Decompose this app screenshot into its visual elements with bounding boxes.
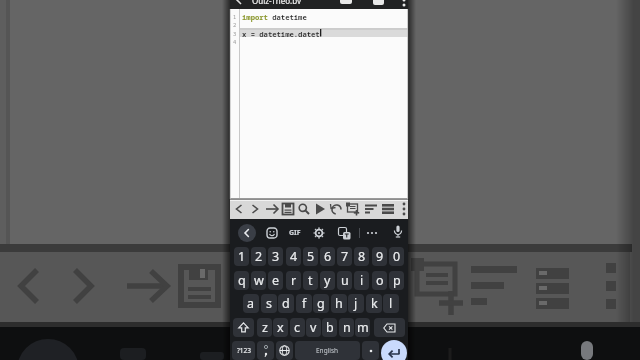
button[interactable]: 9	[372, 247, 387, 266]
button[interactable]	[363, 201, 379, 217]
staticText: p	[393, 272, 401, 289]
staticText: 4	[290, 248, 298, 265]
staticText: j	[354, 295, 358, 312]
button[interactable]: 1	[234, 247, 249, 266]
button[interactable]: x	[273, 318, 288, 337]
staticText: x = datetime.datet	[242, 29, 320, 39]
staticText: English	[316, 346, 339, 355]
button[interactable]: 3	[268, 247, 283, 266]
staticText: r	[291, 272, 297, 289]
button[interactable]: g	[313, 294, 329, 313]
button[interactable]: 5	[303, 247, 318, 266]
button[interactable]: 8	[354, 247, 369, 266]
button[interactable]: d	[278, 294, 294, 313]
button[interactable]: l	[383, 294, 399, 313]
staticText: ?123	[237, 346, 251, 355]
staticText: o	[376, 272, 384, 289]
staticText: b	[326, 319, 334, 336]
button[interactable]	[311, 225, 327, 241]
button[interactable]: 2	[251, 247, 266, 266]
staticText: 9	[376, 248, 384, 265]
button[interactable]: GIF	[286, 225, 304, 241]
staticText: 2	[233, 21, 237, 28]
button[interactable]	[233, 318, 254, 337]
staticText: 5	[307, 248, 315, 265]
button[interactable]: 0	[389, 247, 404, 266]
staticText: i	[360, 272, 364, 289]
button[interactable]: m	[355, 318, 370, 337]
button[interactable]: f	[296, 294, 312, 313]
staticText: k	[371, 295, 378, 312]
staticText: Quiz-Theo.py	[252, 0, 301, 4]
staticText: 0	[393, 248, 401, 265]
button[interactable]: u	[337, 271, 352, 290]
button[interactable]	[276, 341, 293, 360]
button[interactable]: 7	[337, 247, 352, 266]
button[interactable]: b	[322, 318, 337, 337]
staticText: m	[357, 319, 369, 336]
button[interactable]	[380, 201, 396, 217]
button[interactable]	[336, 225, 352, 241]
staticText: u	[341, 272, 349, 289]
button[interactable]	[231, 201, 247, 217]
button[interactable]: e	[268, 271, 283, 290]
staticText: g	[317, 295, 325, 312]
button[interactable]: 4	[286, 247, 301, 266]
button[interactable]	[296, 201, 312, 217]
button[interactable]: o	[372, 271, 387, 290]
staticText: d	[282, 295, 290, 312]
button[interactable]: s	[261, 294, 277, 313]
button[interactable]	[396, 201, 412, 217]
staticText: 1	[233, 13, 237, 20]
staticText: h	[335, 295, 343, 312]
button[interactable]: p	[389, 271, 404, 290]
button[interactable]: English	[295, 341, 360, 360]
button[interactable]: w	[251, 271, 266, 290]
button[interactable]	[247, 201, 263, 217]
button[interactable]	[328, 201, 344, 217]
button[interactable]: k	[366, 294, 382, 313]
staticText: w	[254, 272, 264, 289]
staticText: import datetime	[242, 12, 307, 22]
button[interactable]: c	[290, 318, 305, 337]
staticText: c	[294, 319, 301, 336]
button[interactable]: a	[243, 294, 259, 313]
button[interactable]: h	[331, 294, 347, 313]
button[interactable]: y	[320, 271, 335, 290]
staticText: x	[277, 319, 284, 336]
button[interactable]: ?123	[232, 341, 255, 360]
staticText: z	[262, 319, 268, 336]
button[interactable]	[280, 201, 296, 217]
button[interactable]	[390, 224, 406, 240]
button[interactable]	[374, 318, 405, 337]
button[interactable]	[264, 225, 280, 241]
staticText: a	[247, 295, 255, 312]
staticText: q	[238, 272, 246, 289]
button[interactable]	[257, 341, 274, 360]
button[interactable]	[345, 201, 361, 217]
button[interactable]: i	[354, 271, 369, 290]
button[interactable]: v	[306, 318, 321, 337]
staticText: 7	[341, 248, 349, 265]
staticText: f	[302, 295, 307, 312]
button[interactable]: t	[303, 271, 318, 290]
button[interactable]	[238, 224, 256, 242]
button[interactable]	[362, 341, 379, 360]
button[interactable]: j	[348, 294, 364, 313]
staticText: 2	[255, 248, 263, 265]
staticText: 3	[233, 30, 237, 37]
button[interactable]	[312, 201, 328, 217]
staticText: 8	[358, 248, 366, 265]
button[interactable]: r	[286, 271, 301, 290]
button[interactable]: 6	[320, 247, 335, 266]
button[interactable]	[364, 225, 380, 241]
staticText: 1	[238, 248, 246, 265]
staticText: 4	[233, 38, 237, 45]
button[interactable]: z	[257, 318, 272, 337]
button[interactable]	[381, 340, 407, 360]
button[interactable]	[264, 201, 280, 217]
staticText: GIF	[289, 228, 301, 238]
button[interactable]: q	[234, 271, 249, 290]
button[interactable]: n	[339, 318, 354, 337]
staticText: y	[324, 272, 331, 289]
